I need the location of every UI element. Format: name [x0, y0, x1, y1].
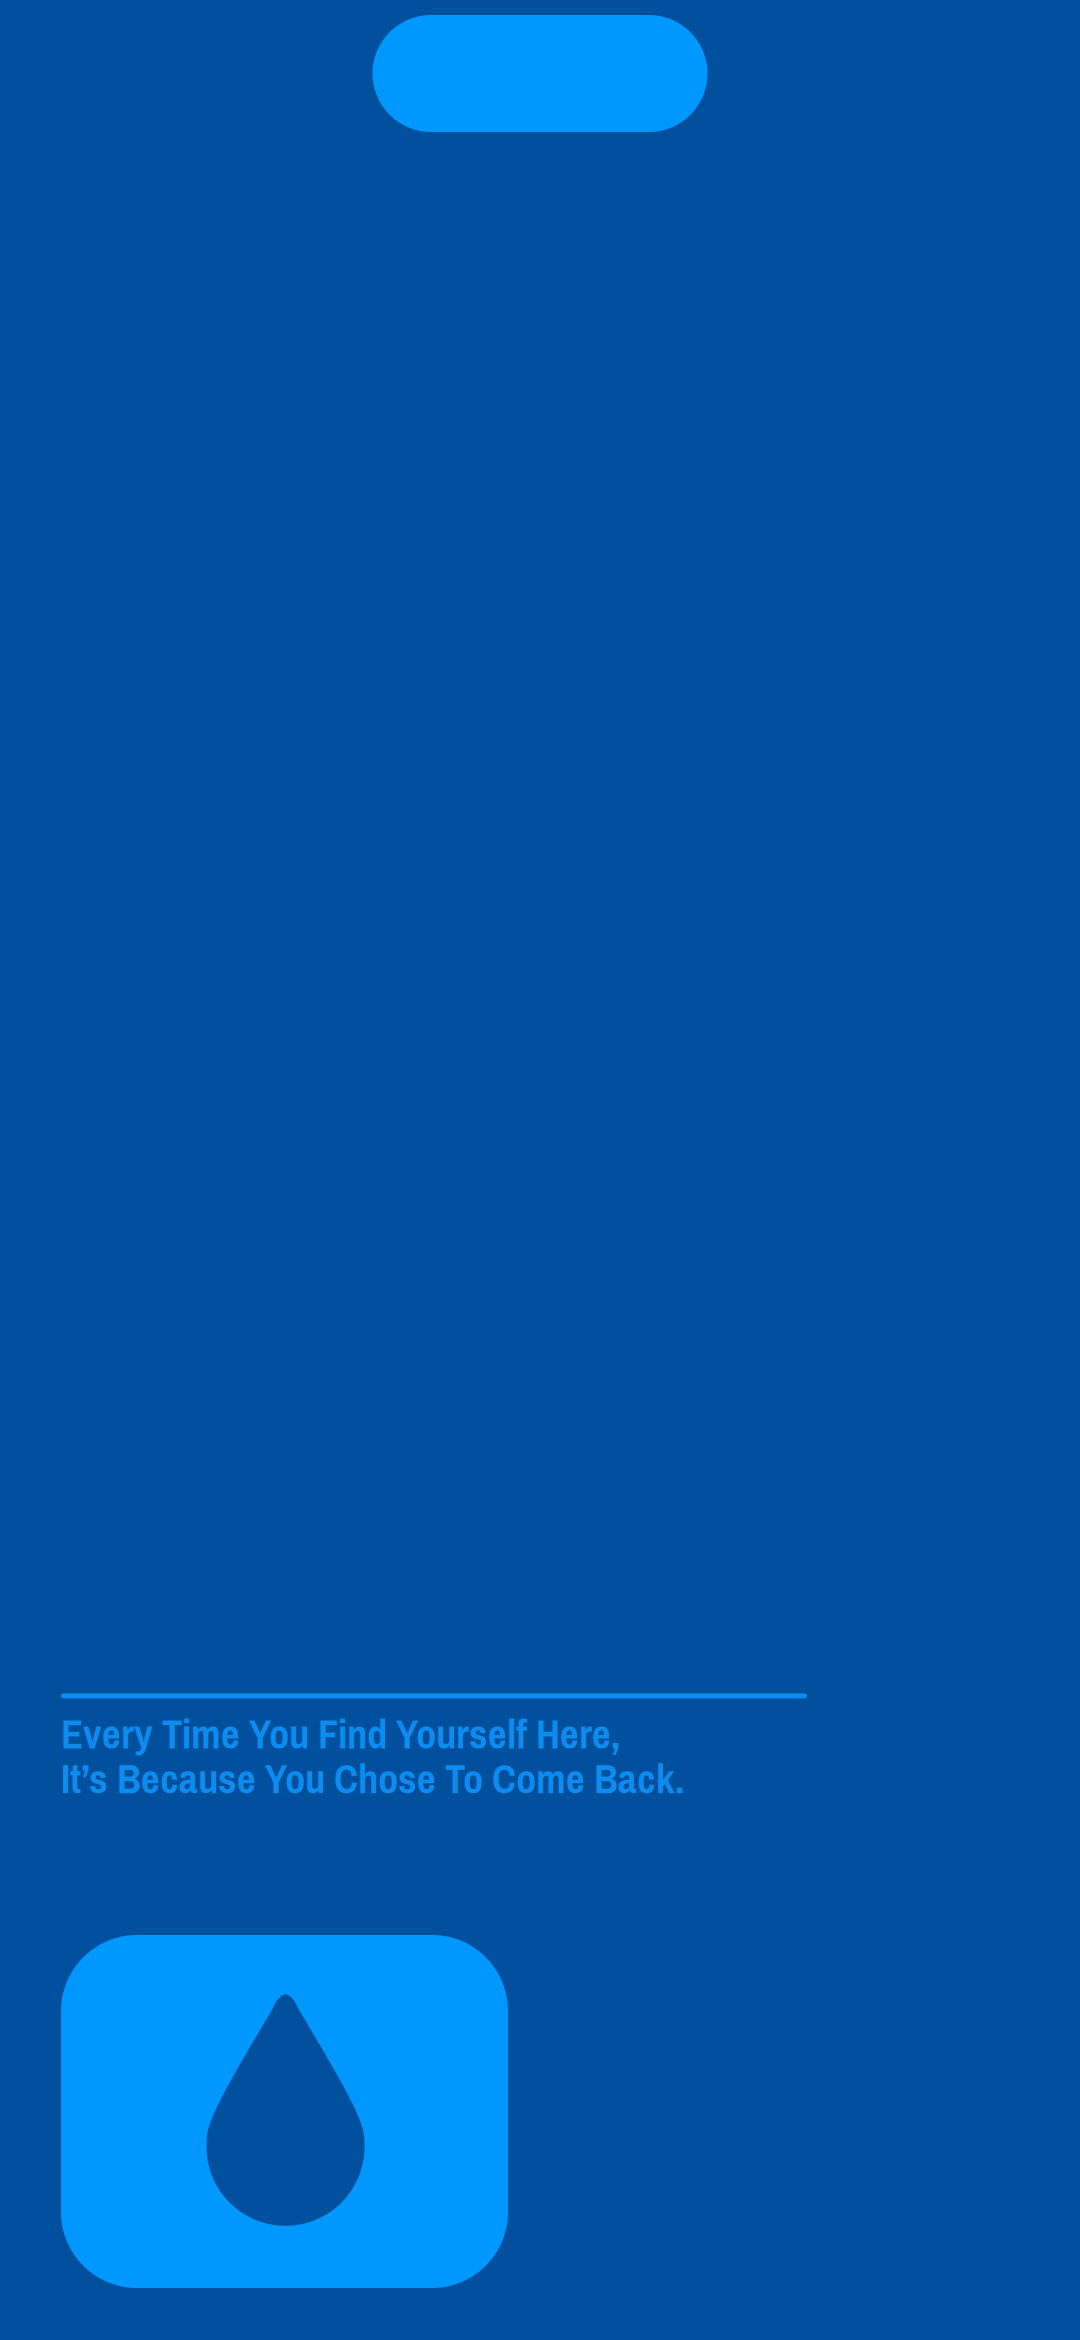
button[interactable]: Open app [61, 1935, 508, 2288]
staticText: Every Time You Find Yourself Here, [61, 1706, 620, 1761]
staticText: It’s Because You Chose To Come Back. [61, 1751, 684, 1806]
